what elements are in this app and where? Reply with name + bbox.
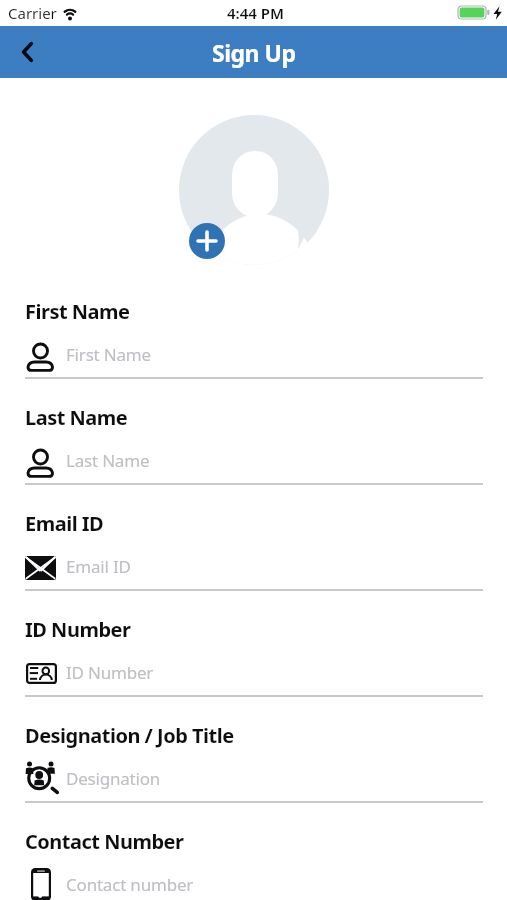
button[interactable]: First Name (0, 300, 507, 406)
staticText: Carrier (8, 3, 57, 23)
button[interactable] (189, 223, 225, 259)
staticText: 4:44 PM (227, 3, 284, 23)
staticText: ID Number (66, 661, 154, 684)
button[interactable]: ID Number (0, 618, 507, 724)
staticText: Last Name (25, 404, 128, 431)
staticText: Email ID (66, 555, 131, 578)
staticText: Last Name (66, 449, 150, 472)
button[interactable] (179, 115, 329, 265)
staticText: Contact number (66, 873, 194, 896)
button[interactable]: Email ID (0, 512, 507, 618)
staticText: Designation (66, 767, 161, 790)
staticText: First Name (66, 343, 151, 366)
staticText: Email ID (25, 510, 104, 537)
button[interactable]: Designation / Job Title (0, 724, 507, 830)
staticText: ID Number (25, 616, 131, 643)
button[interactable] (0, 26, 52, 78)
staticText: First Name (25, 298, 130, 325)
button[interactable]: Last Name (0, 406, 507, 512)
staticText: Contact Number (25, 828, 184, 855)
staticText: Designation / Job Title (25, 722, 234, 749)
button[interactable]: Contact Number (0, 830, 507, 900)
staticText: Sign Up (212, 37, 296, 68)
